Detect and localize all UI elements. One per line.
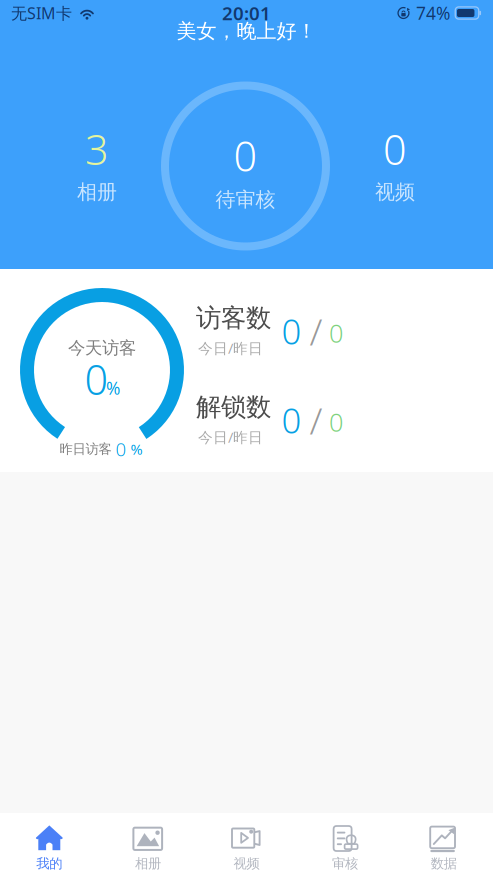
staticText: 0 xyxy=(84,352,108,406)
staticText: 0 xyxy=(115,437,126,461)
staticText: 今天访客 xyxy=(68,337,136,359)
button[interactable]: 我的 xyxy=(0,813,99,879)
staticText: 我的 xyxy=(36,855,62,872)
staticText: % xyxy=(130,439,142,459)
staticText: 访客数 xyxy=(196,302,271,333)
staticText: 3 xyxy=(85,122,109,176)
staticText: 数据 xyxy=(431,855,457,872)
staticText: 0 xyxy=(329,405,343,439)
staticText: 0 xyxy=(281,308,301,354)
staticText: 74% xyxy=(416,1,450,24)
staticText: 无SIM卡 xyxy=(11,2,72,24)
staticText: 0 xyxy=(329,316,343,350)
staticText: 相册 xyxy=(77,180,117,204)
staticText: / xyxy=(309,395,322,445)
staticText: 解锁数 xyxy=(196,391,271,422)
staticText: 20:01 xyxy=(222,1,271,25)
staticText: 今日/昨日 xyxy=(198,427,263,447)
staticText: 昨日访客 xyxy=(59,441,111,457)
button[interactable]: 0 xyxy=(165,85,326,246)
button[interactable]: 3 xyxy=(42,125,152,215)
staticText: 0 xyxy=(233,128,257,183)
staticText: 视频 xyxy=(375,180,415,204)
staticText: 0 xyxy=(281,397,301,443)
staticText: 审核 xyxy=(332,855,358,872)
staticText: 相册 xyxy=(135,855,161,872)
staticText: 美女，晚上好！ xyxy=(176,19,316,43)
button[interactable]: 0 xyxy=(340,125,450,215)
button[interactable]: 审核 xyxy=(296,813,394,879)
button[interactable]: 相册 xyxy=(99,813,197,879)
staticText: % xyxy=(106,376,120,399)
button[interactable]: 视频 xyxy=(197,813,296,879)
staticText: 今日/昨日 xyxy=(198,338,263,358)
staticText: 0 xyxy=(383,122,407,176)
staticText: 待审核 xyxy=(215,187,275,212)
staticText: 视频 xyxy=(233,855,259,872)
staticText: / xyxy=(309,306,322,356)
button[interactable]: 数据 xyxy=(394,813,493,879)
